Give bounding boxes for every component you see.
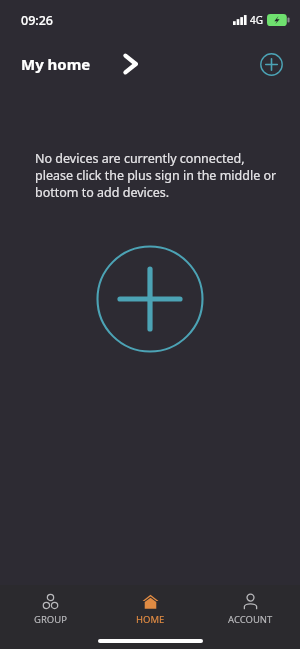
- button[interactable]: My home: [21, 53, 139, 75]
- button[interactable]: HOME: [100, 588, 200, 631]
- button[interactable]: Add device: [254, 47, 288, 81]
- button[interactable]: Add device: [95, 244, 205, 354]
- staticText: No devices are currently connected, plea…: [35, 150, 277, 201]
- staticText: GROUP: [34, 613, 67, 626]
- button[interactable]: ACCOUNT: [200, 588, 300, 631]
- staticText: My home: [21, 54, 91, 74]
- staticText: ACCOUNT: [228, 613, 273, 626]
- staticText: 09:26: [21, 12, 54, 29]
- button[interactable]: GROUP: [0, 588, 100, 631]
- staticText: 4G: [250, 13, 263, 27]
- staticText: HOME: [136, 613, 165, 626]
